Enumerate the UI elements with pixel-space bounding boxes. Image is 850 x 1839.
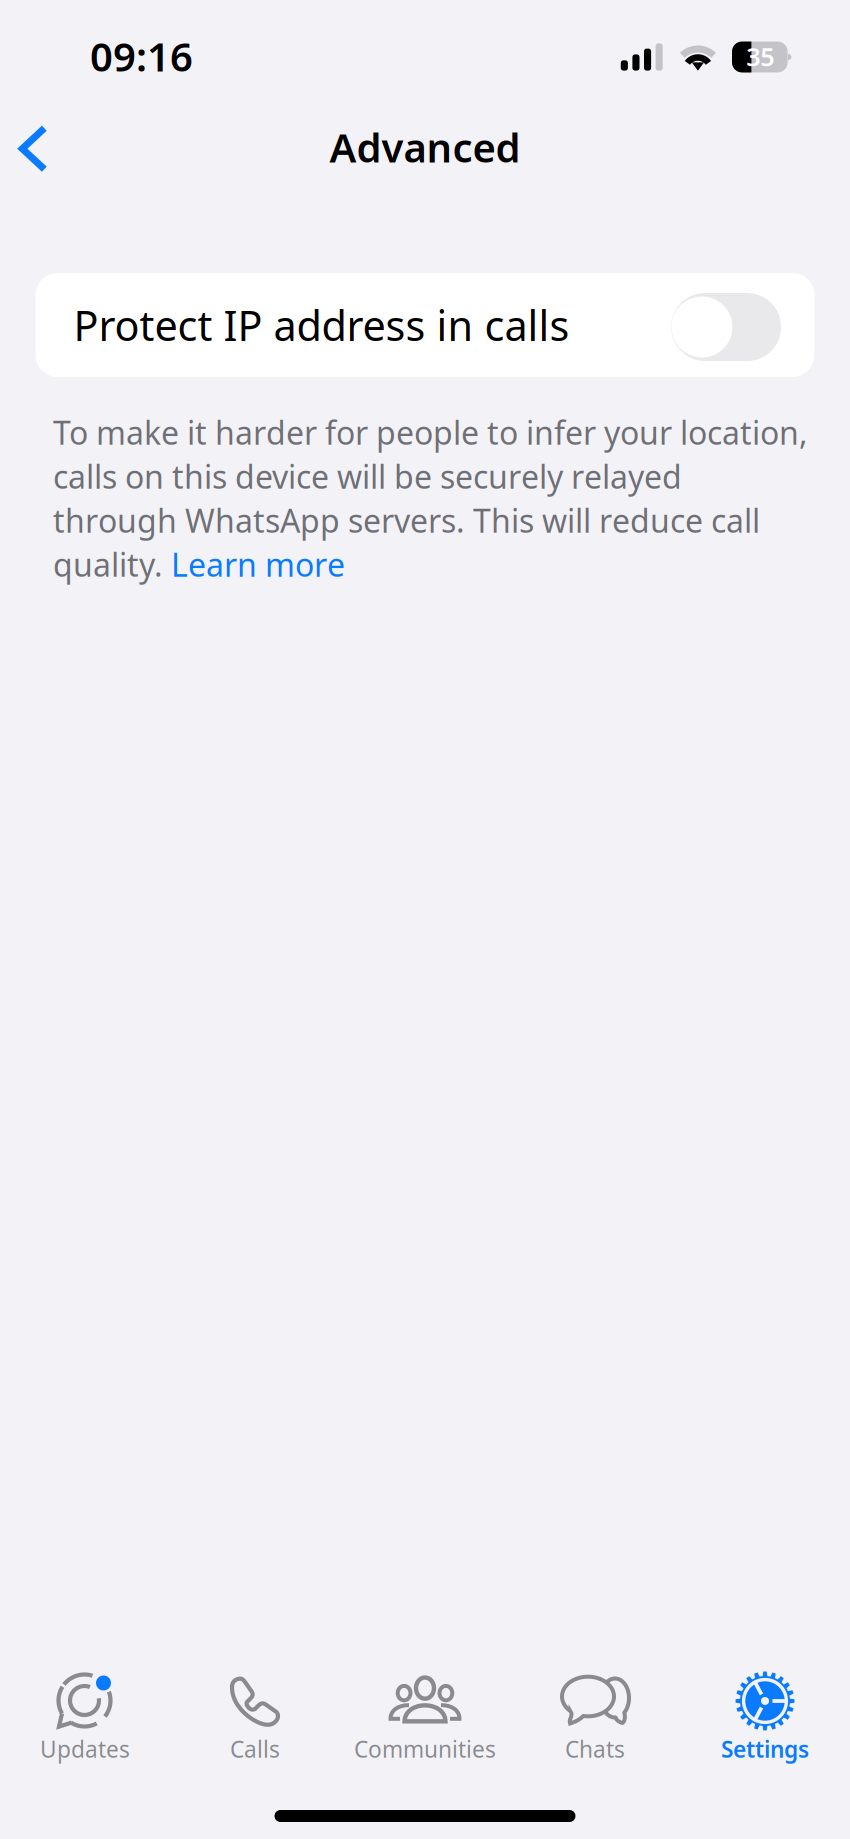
staticText: 09:16: [90, 29, 193, 82]
staticText: Settings: [721, 1734, 809, 1764]
button[interactable]: Settings: [680, 1660, 850, 1770]
button[interactable]: Calls: [170, 1660, 340, 1770]
button[interactable]: Chats: [510, 1660, 680, 1770]
staticText: Advanced: [329, 120, 520, 173]
button[interactable]: Updates: [0, 1660, 170, 1770]
staticText: Communities: [354, 1734, 496, 1764]
staticText: To make it harder for people to infer yo…: [53, 411, 808, 453]
staticText: Updates: [40, 1734, 130, 1764]
staticText: through WhatsApp servers. This will redu…: [53, 499, 760, 541]
button[interactable]: Learn more: [171, 543, 345, 585]
staticText: Chats: [565, 1734, 625, 1764]
staticText: calls on this device will be securely re…: [53, 455, 682, 497]
staticText: Calls: [230, 1734, 280, 1764]
staticText: 35: [746, 40, 774, 73]
button[interactable]: Back: [0, 96, 72, 192]
button[interactable]: Communities: [340, 1660, 510, 1770]
staticText: Learn more: [171, 543, 345, 585]
staticText: Protect IP address in calls: [73, 298, 569, 352]
button[interactable]: Protect IP address in calls: [35, 273, 814, 377]
staticText: quality.: [53, 543, 171, 585]
